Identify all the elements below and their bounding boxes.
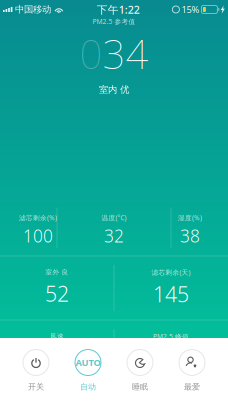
staticText: AUTO	[75, 356, 100, 369]
staticText: 室内 优	[99, 84, 129, 95]
button[interactable]: 开关	[10, 349, 62, 392]
staticText: PM2.5 峰值	[153, 332, 189, 341]
staticText: 34	[102, 27, 148, 80]
staticText: 自动	[80, 382, 96, 392]
staticText: PM2.5 参考值	[92, 17, 135, 26]
staticText: 100	[23, 224, 53, 247]
staticText: 52	[45, 279, 69, 308]
staticText: 38	[180, 224, 200, 247]
button[interactable]: 睡眠	[114, 349, 166, 392]
staticText: 温度(°C)	[101, 213, 126, 222]
staticText: 滤芯剩余(%)	[19, 213, 57, 222]
staticText: 睡眠	[132, 382, 148, 392]
staticText: 最爱	[184, 382, 200, 392]
staticText: 下午1:22	[97, 2, 140, 17]
staticText: 风速	[50, 332, 64, 340]
button[interactable]: AUTO	[62, 349, 114, 392]
staticText: 61	[159, 344, 183, 372]
staticText: 中国移动	[15, 4, 51, 15]
staticText: 145	[153, 280, 189, 308]
staticText: 15%	[181, 3, 199, 16]
staticText: 湿度(%)	[178, 213, 202, 222]
staticText: 32	[104, 224, 124, 247]
staticText: 0	[79, 27, 102, 80]
staticText: 开关	[28, 382, 44, 392]
button[interactable]: 最爱	[166, 349, 218, 392]
staticText: 室外 良	[45, 268, 68, 276]
staticText: 滤芯剩余(天)	[151, 268, 190, 277]
